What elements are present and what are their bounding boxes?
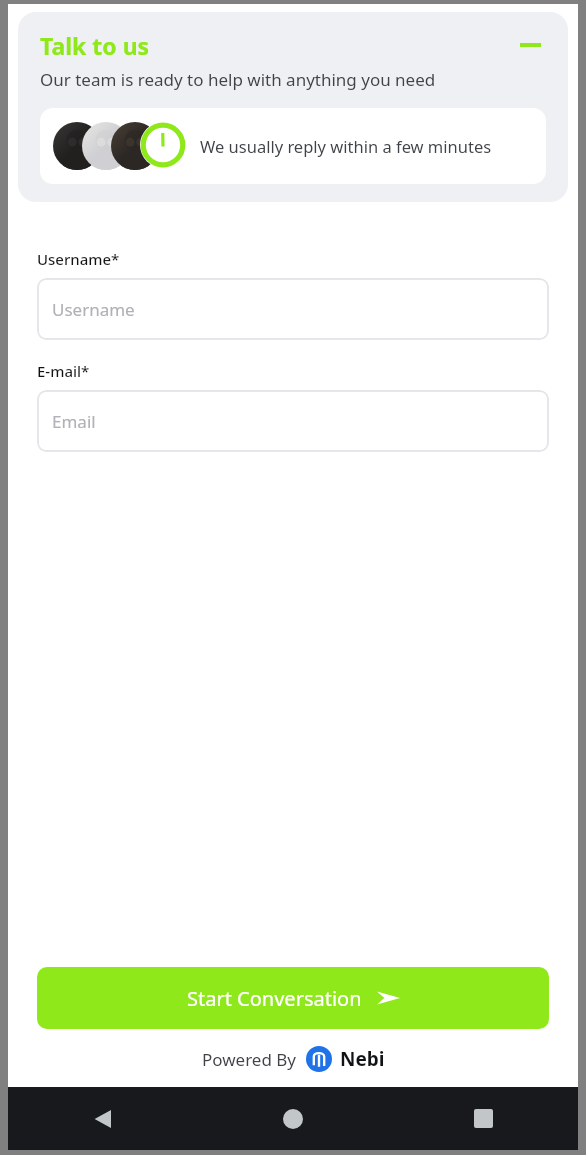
staticText: Start Conversation xyxy=(187,985,362,1012)
button[interactable]: Home xyxy=(198,1087,388,1150)
button[interactable]: We usually reply within a few minutes xyxy=(40,108,546,184)
staticText: Talk to us xyxy=(40,30,150,61)
button[interactable]: Email xyxy=(37,390,549,452)
button[interactable]: Back xyxy=(8,1087,198,1150)
button[interactable]: Start Conversation xyxy=(37,967,549,1029)
button[interactable]: Collapse xyxy=(514,29,546,61)
staticText: Username xyxy=(52,298,135,321)
staticText: E-mail* xyxy=(37,361,90,381)
button[interactable]: Powered By xyxy=(8,1046,578,1072)
button[interactable]: Recent apps xyxy=(388,1087,578,1150)
staticText: Powered By xyxy=(202,1048,297,1071)
staticText: We usually reply within a few minutes xyxy=(200,135,492,157)
staticText: Nebi xyxy=(340,1046,385,1072)
staticText: Our team is ready to help with anything … xyxy=(40,68,436,91)
button[interactable]: Username xyxy=(37,278,549,340)
staticText: Username* xyxy=(37,249,120,269)
staticText: Email xyxy=(52,410,96,433)
